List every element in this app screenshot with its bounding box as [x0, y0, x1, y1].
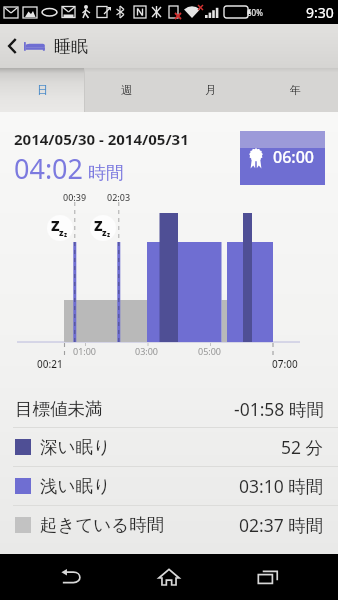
- staticText: 起きている時間: [40, 514, 165, 536]
- staticText: 52 分: [281, 435, 324, 459]
- staticText: z: [107, 231, 111, 239]
- button[interactable]: 年: [253, 68, 338, 112]
- button[interactable]: 月: [168, 68, 253, 112]
- staticText: 年: [290, 83, 301, 97]
- staticText: 00:39: [63, 191, 87, 203]
- staticText: z: [64, 231, 68, 239]
- button[interactable]: 週: [84, 68, 168, 112]
- button[interactable]: 浅い眠り: [0, 467, 338, 505]
- staticText: 睡眠: [54, 36, 88, 57]
- staticText: 03:10 時間: [239, 474, 324, 498]
- staticText: 07:00: [272, 357, 298, 371]
- staticText: Z: [94, 216, 103, 235]
- staticText: 時間: [88, 162, 124, 185]
- staticText: -01:58 時間: [234, 397, 324, 421]
- staticText: z: [102, 226, 107, 238]
- button[interactable]: Back: [43, 554, 99, 600]
- staticText: 01:00: [73, 345, 97, 357]
- staticText: 日: [37, 83, 48, 97]
- staticText: 03:00: [135, 345, 159, 357]
- button[interactable]: 起きている時間: [0, 506, 338, 544]
- staticText: 04:02: [14, 150, 84, 187]
- button[interactable]: 目標値未満: [0, 390, 338, 427]
- staticText: 02:03: [107, 191, 131, 203]
- button[interactable]: Home: [141, 554, 197, 600]
- staticText: z: [59, 226, 64, 238]
- staticText: 月: [205, 83, 216, 97]
- staticText: 週: [121, 83, 132, 97]
- button[interactable]: Back to Sleep: [0, 24, 338, 68]
- staticText: 60%: [247, 7, 263, 18]
- staticText: 05:00: [198, 345, 222, 357]
- staticText: Z: [51, 216, 60, 235]
- button[interactable]: Recent apps: [240, 554, 296, 600]
- staticText: 02:37 時間: [239, 513, 324, 537]
- staticText: 深い眠り: [40, 436, 111, 458]
- button[interactable]: 06:00: [240, 131, 325, 185]
- staticText: 06:00: [273, 146, 314, 168]
- staticText: 2014/05/30 - 2014/05/31: [14, 129, 189, 149]
- button[interactable]: 深い眠り: [0, 428, 338, 466]
- button[interactable]: 日: [0, 68, 84, 112]
- staticText: 浅い眠り: [40, 475, 111, 497]
- staticText: 00:21: [37, 357, 63, 371]
- staticText: 9:30: [306, 3, 334, 22]
- staticText: 目標値未満: [15, 398, 103, 420]
